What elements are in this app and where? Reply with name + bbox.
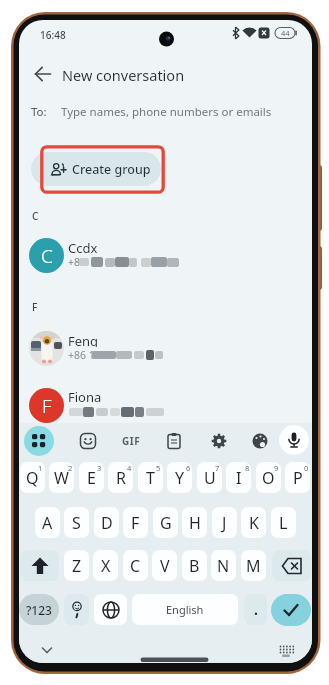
button[interactable]: R: [108, 462, 133, 493]
staticText: V: [160, 555, 170, 577]
button[interactable]: V: [152, 550, 177, 581]
button[interactable]: U: [197, 462, 222, 493]
staticText: O: [262, 467, 275, 489]
button[interactable]: .: [244, 594, 267, 625]
staticText: M: [246, 555, 261, 577]
button[interactable]: B: [182, 550, 207, 581]
staticText: Create group: [72, 161, 151, 178]
button[interactable]: T: [138, 462, 163, 493]
button[interactable]: K: [241, 507, 266, 538]
button[interactable]: H: [182, 507, 207, 538]
staticText: E: [87, 467, 96, 489]
staticText: .: [254, 600, 258, 619]
button[interactable]: [251, 432, 269, 450]
staticText: 16:48: [40, 28, 66, 40]
staticText: H: [189, 512, 201, 534]
staticText: 44: [281, 28, 290, 38]
button[interactable]: Q: [20, 462, 45, 493]
button[interactable]: J: [212, 507, 237, 538]
button[interactable]: G: [153, 507, 178, 538]
staticText: New conversation: [62, 65, 185, 85]
button[interactable]: [19, 385, 312, 425]
button[interactable]: [271, 594, 311, 626]
button[interactable]: [19, 328, 312, 370]
staticText: I: [236, 467, 242, 489]
button[interactable]: M: [241, 550, 266, 581]
staticText: 2: [68, 463, 73, 473]
button[interactable]: Y: [167, 462, 192, 493]
button[interactable]: N: [211, 550, 236, 581]
button[interactable]: F: [123, 507, 148, 538]
button[interactable]: I: [226, 462, 251, 493]
staticText: English: [166, 602, 204, 617]
button[interactable]: L: [271, 507, 296, 538]
staticText: F: [131, 512, 140, 534]
staticText: T: [146, 467, 155, 489]
staticText: Y: [175, 467, 185, 489]
button[interactable]: [210, 432, 228, 450]
staticText: D: [101, 512, 113, 534]
staticText: S: [72, 512, 81, 534]
button[interactable]: W: [49, 462, 74, 493]
staticText: L: [279, 512, 288, 534]
staticText: 8: [245, 463, 250, 473]
button[interactable]: P: [285, 462, 310, 493]
staticText: F: [42, 393, 52, 419]
staticText: F: [32, 300, 38, 314]
staticText: GIF: [122, 434, 141, 448]
staticText: B: [189, 555, 200, 577]
button[interactable]: D: [94, 507, 119, 538]
staticText: J: [222, 512, 227, 534]
staticText: C: [41, 243, 53, 269]
staticText: +8: [68, 255, 81, 268]
button[interactable]: E: [79, 462, 104, 493]
button[interactable]: [20, 550, 59, 581]
staticText: Type names, phone numbers or emails: [61, 104, 272, 120]
button[interactable]: Z: [64, 550, 89, 581]
button[interactable]: A: [35, 507, 60, 538]
staticText: C: [32, 209, 39, 223]
staticText: 9: [274, 463, 279, 473]
staticText: 6: [186, 463, 191, 473]
button[interactable]: English: [132, 594, 238, 625]
button[interactable]: [33, 64, 63, 85]
button[interactable]: O: [256, 462, 281, 493]
button[interactable]: X: [93, 550, 118, 581]
staticText: 4: [127, 463, 132, 473]
button[interactable]: C: [123, 550, 148, 581]
button[interactable]: [24, 426, 54, 456]
button[interactable]: [19, 234, 312, 276]
staticText: A: [42, 512, 53, 534]
staticText: R: [116, 467, 126, 489]
button[interactable]: [94, 594, 127, 625]
staticText: 5: [156, 463, 161, 473]
staticText: U: [204, 467, 216, 489]
staticText: 0: [304, 463, 309, 473]
staticText: G: [160, 512, 172, 534]
staticText: To:: [31, 104, 47, 120]
staticText: W: [54, 467, 69, 489]
staticText: X: [101, 555, 111, 577]
button[interactable]: [79, 432, 97, 450]
button[interactable]: S: [64, 507, 89, 538]
staticText: 7: [215, 463, 220, 473]
button[interactable]: ?123: [19, 594, 59, 625]
staticText: Ccdx: [68, 239, 98, 254]
staticText: P: [293, 467, 303, 489]
staticText: 1: [38, 463, 43, 473]
staticText: +86 1: [68, 348, 95, 361]
staticText: Feng: [68, 332, 99, 347]
staticText: C: [130, 555, 141, 577]
button[interactable]: Create group: [31, 152, 161, 186]
staticText: Fiona: [68, 388, 102, 403]
button[interactable]: [272, 550, 311, 581]
staticText: 3: [97, 463, 102, 473]
button[interactable]: [165, 432, 183, 450]
button[interactable]: [279, 425, 309, 455]
button[interactable]: [19, 98, 312, 126]
button[interactable]: [64, 594, 89, 625]
staticText: ?123: [26, 602, 52, 618]
staticText: Q: [26, 467, 39, 489]
staticText: Z: [72, 555, 82, 577]
staticText: N: [217, 555, 230, 577]
